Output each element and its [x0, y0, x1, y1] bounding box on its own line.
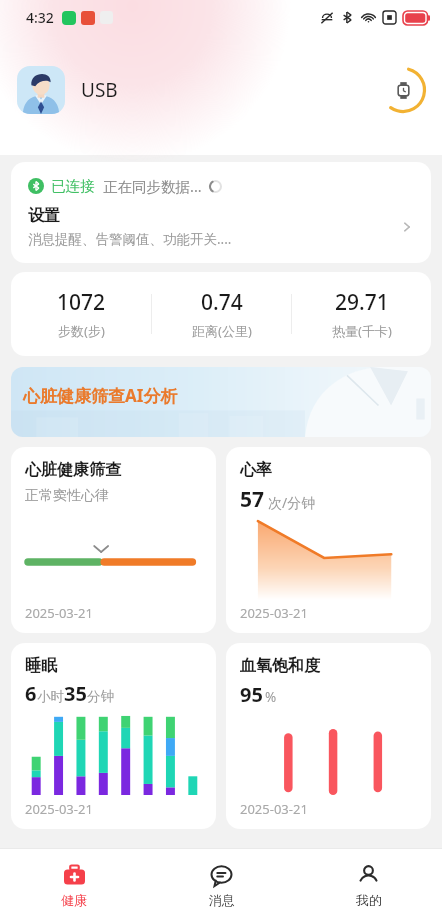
staticText: 设置 — [28, 206, 60, 226]
staticText: 1072 — [57, 288, 106, 317]
staticText: 距离(公里) — [192, 322, 252, 340]
button[interactable]: Connected watch — [380, 67, 426, 113]
staticText: 2025-03-21 — [240, 800, 308, 818]
staticText: % — [265, 688, 277, 706]
staticText: 步数(步) — [58, 322, 105, 340]
staticText: 心率 — [240, 460, 272, 480]
staticText: 次/分钟 — [268, 493, 316, 512]
button[interactable]: 0.74 — [152, 288, 291, 340]
staticText: 正常窦性心律 — [25, 487, 109, 505]
button[interactable]: 心脏健康筛查 — [11, 447, 216, 633]
button[interactable]: 心脏健康筛查AI分析 — [11, 367, 431, 437]
staticText: 95 — [240, 681, 263, 708]
button[interactable]: 设置 — [11, 200, 431, 263]
button[interactable]: 消息 — [148, 849, 295, 923]
staticText: 已连接 — [51, 177, 95, 195]
staticText: 分钟 — [87, 688, 114, 705]
button[interactable]: 心率 — [226, 447, 431, 633]
staticText: 2025-03-21 — [25, 604, 93, 622]
staticText: 我的 — [356, 892, 382, 908]
button[interactable]: 睡眠 — [11, 643, 216, 829]
staticText: 正在同步数据... — [103, 176, 202, 196]
staticText: 健康 — [61, 892, 87, 908]
button[interactable]: Profile avatar — [17, 66, 65, 114]
staticText: 29.71 — [335, 288, 389, 317]
staticText: 消息 — [209, 892, 235, 908]
staticText: 心脏健康筛查 — [25, 460, 121, 480]
staticText: 热量(千卡) — [332, 322, 392, 340]
button[interactable]: 29.71 — [292, 288, 431, 340]
staticText: 小时 — [37, 688, 64, 705]
staticText: 2025-03-21 — [240, 604, 308, 622]
staticText: USB — [81, 77, 118, 103]
staticText: 2025-03-21 — [25, 800, 93, 818]
staticText: 心脏健康筛查AI分析 — [23, 384, 178, 407]
button[interactable]: 1072 — [11, 288, 151, 340]
staticText: 57 — [240, 485, 265, 514]
button[interactable]: 健康 — [0, 849, 148, 923]
staticText: 血氧饱和度 — [240, 656, 320, 676]
staticText: 4:32 — [26, 8, 54, 27]
button[interactable]: 我的 — [295, 849, 442, 923]
button[interactable]: 血氧饱和度 — [226, 643, 431, 829]
staticText: 消息提醒、告警阈值、功能开关.... — [28, 230, 232, 248]
staticText: 6 — [25, 680, 37, 707]
staticText: 35 — [64, 680, 87, 707]
staticText: 0.74 — [201, 288, 243, 317]
staticText: 睡眠 — [25, 656, 57, 676]
